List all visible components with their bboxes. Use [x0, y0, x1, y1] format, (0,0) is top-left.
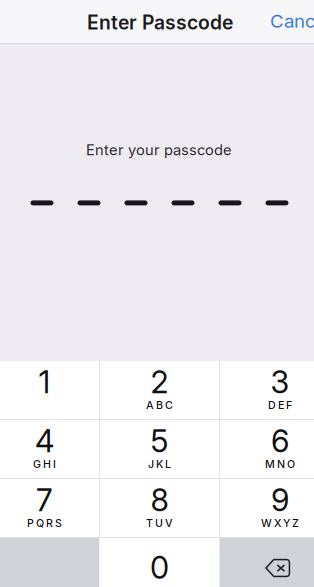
button[interactable]: 2 [99, 361, 219, 419]
staticText: 5 [150, 422, 168, 460]
staticText: J K L [148, 458, 171, 470]
button[interactable]: 5 [99, 420, 219, 478]
staticText: Cancel [270, 10, 314, 32]
button[interactable]: 4 [0, 420, 99, 478]
staticText: 3 [270, 363, 289, 401]
button[interactable]: 1 [0, 361, 99, 419]
button[interactable]: 3 [219, 361, 314, 419]
button[interactable]: 0 [99, 538, 219, 587]
staticText: Enter Passcode [87, 11, 233, 34]
staticText: 7 [36, 481, 53, 519]
button[interactable]: 6 [219, 420, 314, 478]
button[interactable]: 7 [0, 479, 99, 537]
button[interactable]: 9 [219, 479, 314, 537]
button[interactable]: Delete [219, 538, 314, 587]
staticText: W X Y Z [261, 517, 299, 529]
staticText: T U V [146, 517, 173, 529]
staticText: 6 [271, 422, 289, 460]
staticText: 1 [38, 363, 50, 401]
staticText: D E F [268, 399, 292, 411]
staticText: P Q R S [27, 517, 62, 529]
staticText: M N O [265, 458, 295, 470]
staticText: A B C [146, 399, 173, 411]
staticText: 4 [35, 422, 54, 460]
button[interactable]: Blank [0, 538, 99, 587]
staticText: 0 [150, 549, 169, 586]
staticText: G H I [33, 458, 56, 470]
staticText: 9 [271, 481, 289, 519]
button[interactable]: Cancel [270, 0, 314, 43]
staticText: Enter your passcode [86, 141, 232, 159]
staticText: 2 [150, 363, 168, 401]
staticText: 8 [150, 481, 168, 519]
button[interactable]: 8 [99, 479, 219, 537]
